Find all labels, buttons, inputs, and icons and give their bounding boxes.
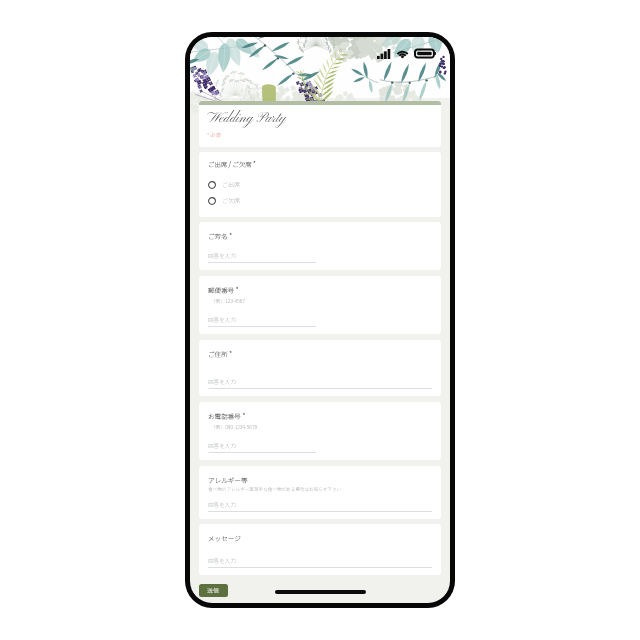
staticText: 回答を入力: [208, 442, 236, 450]
staticText: Wedding Party: [207, 110, 286, 128]
staticText: ご出席: [222, 180, 241, 189]
staticText: ご出席 / ご欠席 *: [208, 160, 256, 169]
staticText: （例）123-4567: [208, 297, 246, 304]
button[interactable]: ご出席: [208, 180, 441, 189]
staticText: メッセージ: [208, 533, 241, 543]
staticText: 回答を入力: [208, 378, 236, 386]
button[interactable]: メッセージ: [199, 524, 441, 575]
button[interactable]: 送信: [199, 584, 228, 597]
button[interactable]: お電話番号 *: [199, 402, 441, 460]
staticText: アレルギー等: [208, 475, 248, 485]
staticText: 食べ物のアレルギー等苦手な食べ物がある場合はお知らせ下さい: [208, 486, 342, 493]
staticText: * 必須: [207, 131, 221, 139]
staticText: お電話番号 *: [208, 411, 246, 421]
other: Cellular signal: [377, 49, 392, 59]
other: Battery: [415, 48, 436, 59]
staticText: 回答を入力: [208, 557, 236, 565]
staticText: 送信: [207, 586, 220, 595]
button[interactable]: ご住所 *: [199, 340, 441, 396]
staticText: （例）090-1234-5678: [208, 423, 258, 430]
staticText: ご芳名 *: [208, 231, 233, 241]
button[interactable]: ご欠席: [208, 196, 441, 205]
button[interactable]: 郵便番号 *: [199, 276, 441, 334]
button[interactable]: アレルギー等: [199, 466, 441, 519]
other: Wi-Fi: [396, 49, 409, 59]
staticText: 回答を入力: [208, 316, 236, 324]
button[interactable]: ご芳名 *: [199, 222, 441, 270]
staticText: ご住所 *: [208, 349, 233, 359]
staticText: ご欠席: [222, 196, 241, 205]
staticText: 回答を入力: [208, 252, 236, 260]
staticText: 回答を入力: [208, 501, 236, 509]
staticText: 郵便番号 *: [208, 285, 239, 295]
